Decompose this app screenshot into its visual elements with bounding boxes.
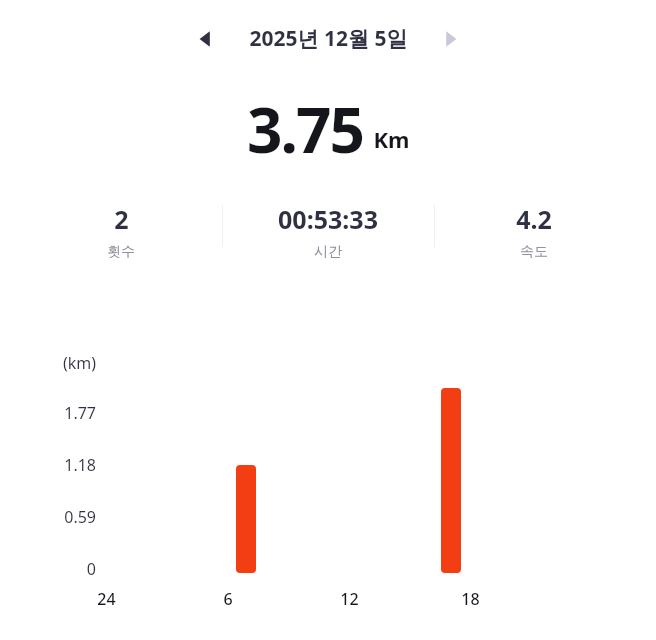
staticText: 2025년 12월 5일 bbox=[249, 24, 408, 53]
staticText: 0 bbox=[86, 558, 96, 580]
staticText: 18 bbox=[461, 588, 480, 610]
staticText: 속도 bbox=[520, 243, 548, 261]
button[interactable]: 4.2 bbox=[435, 196, 597, 270]
staticText: Km bbox=[373, 124, 410, 154]
staticText: 3.75 bbox=[247, 87, 363, 171]
staticText: 시간 bbox=[314, 243, 342, 261]
staticText: 0.59 bbox=[64, 506, 96, 528]
staticText: 12 bbox=[340, 588, 359, 610]
staticText: 1.77 bbox=[64, 402, 96, 424]
button[interactable]: 이전 날짜 bbox=[190, 23, 222, 55]
staticText: 6 bbox=[223, 588, 233, 610]
button[interactable]: 다음 날짜 bbox=[434, 23, 466, 55]
button[interactable]: 00:53:33 bbox=[223, 196, 434, 270]
button[interactable]: 2 bbox=[60, 196, 222, 270]
staticText: 횟수 bbox=[107, 243, 135, 261]
staticText: 00:53:33 bbox=[278, 202, 378, 236]
staticText: 4.2 bbox=[516, 202, 552, 236]
staticText: 24 bbox=[97, 588, 116, 610]
staticText: 1.18 bbox=[64, 454, 96, 476]
staticText: (km) bbox=[62, 352, 96, 374]
staticText: 2 bbox=[114, 202, 129, 236]
